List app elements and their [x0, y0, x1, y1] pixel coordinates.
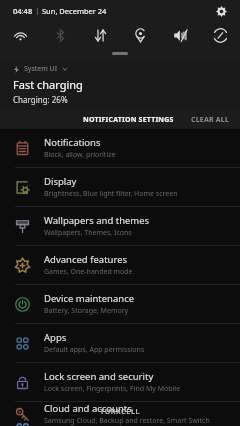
button[interactable]: Apps: [0, 324, 240, 362]
staticText: Samsung Cloud, Backup and restore, Smart…: [44, 416, 210, 426]
staticText: Advanced features: [44, 253, 128, 266]
staticText: Battery, Storage, Memory: [44, 306, 129, 316]
staticText: NOTIFICATION SETTINGS: [83, 115, 174, 125]
button[interactable]: Mute: [160, 22, 200, 48]
staticText: Cloud and accounts: [44, 402, 132, 415]
staticText: 04:48: [13, 6, 33, 16]
staticText: Display: [44, 175, 77, 188]
button[interactable]: NOTIFICATION SETTINGS: [78, 111, 179, 129]
staticText: Lock screen and security: [44, 370, 154, 383]
button[interactable]: Bluetooth: [40, 22, 80, 48]
button[interactable]: Wi-Fi: [0, 22, 40, 48]
staticText: System UI: [24, 64, 58, 74]
staticText: Lock screen, Fingerprints, Find My Mobil…: [44, 384, 181, 394]
button[interactable]: Advanced features: [0, 246, 240, 284]
staticText: Charging: 26%: [13, 94, 68, 105]
staticText: Brightness, Blue light filter, Home scre…: [44, 189, 178, 199]
staticText: Notifications: [44, 136, 101, 149]
button[interactable]: Display: [0, 168, 240, 206]
button[interactable]: Smart View: [200, 22, 240, 48]
staticText: Games, One-handed mode: [44, 267, 133, 277]
button[interactable]: Cloud and accounts: [0, 402, 240, 426]
button[interactable]: Notifications: [0, 129, 240, 167]
staticText: Wallpapers and themes: [44, 214, 150, 227]
staticText: TURKCELL: [100, 406, 141, 416]
button[interactable]: Mobile data: [80, 22, 120, 48]
button[interactable]: Device maintenance: [0, 285, 240, 323]
button[interactable]: Settings: [211, 1, 231, 21]
button[interactable]: Wallpapers and themes: [0, 207, 240, 245]
button[interactable]: Location: [120, 22, 160, 48]
staticText: Fast charging: [13, 77, 83, 92]
button[interactable]: CLEAR ALL: [186, 111, 235, 129]
button[interactable]: Lock screen and security: [0, 363, 240, 401]
staticText: Device maintenance: [44, 292, 135, 305]
staticText: Block, allow, prioritize: [44, 150, 116, 160]
staticText: Sun, December 24: [42, 6, 107, 16]
button[interactable]: Expand quick settings: [112, 52, 128, 55]
staticText: CLEAR ALL: [191, 115, 230, 125]
staticText: Apps: [44, 331, 67, 344]
staticText: Default apps, App permissions: [44, 345, 145, 355]
staticText: Wallpapers, Themes, Icons: [44, 228, 132, 238]
